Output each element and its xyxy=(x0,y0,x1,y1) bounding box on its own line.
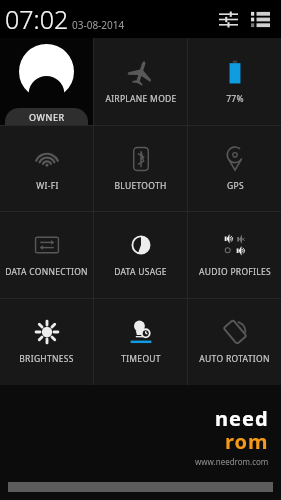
button[interactable]: WI-FI xyxy=(0,126,93,211)
staticText: www.needrom.com xyxy=(195,456,269,467)
staticText: AIRPLANE MODE xyxy=(105,93,177,105)
button[interactable]: BLUETOOTH xyxy=(94,126,187,211)
staticText: DATA USAGE xyxy=(114,266,167,278)
staticText: AUDIO PROFILES xyxy=(199,266,271,278)
staticText: 03-08-2014 xyxy=(72,18,125,32)
staticText: BLUETOOTH xyxy=(114,180,167,192)
staticText: TIMEOUT xyxy=(121,353,161,365)
button[interactable]: 77% xyxy=(188,38,281,125)
staticText: 07:02 xyxy=(5,2,69,36)
staticText: need xyxy=(215,405,269,432)
button[interactable]: AUDIO PROFILES xyxy=(188,212,281,298)
button[interactable]: TIMEOUT xyxy=(94,299,187,385)
staticText: WI-FI xyxy=(36,180,59,192)
staticText: DATA CONNECTION xyxy=(5,266,88,278)
button[interactable]: DATA USAGE xyxy=(94,212,187,298)
staticText: OWNER xyxy=(29,111,65,123)
button[interactable]: AUTO ROTATION xyxy=(188,299,281,385)
button[interactable]: GPS xyxy=(188,126,281,211)
button[interactable]: Notifications xyxy=(246,5,274,33)
button[interactable]: Owner profile xyxy=(0,38,93,125)
button[interactable]: AIRPLANE MODE xyxy=(94,38,187,125)
button[interactable]: BRIGHTNESS xyxy=(0,299,93,385)
staticText: AUTO ROTATION xyxy=(199,353,270,365)
button[interactable]: Settings xyxy=(214,5,242,33)
staticText: rom xyxy=(225,428,269,455)
staticText: BRIGHTNESS xyxy=(19,353,74,365)
staticText: GPS xyxy=(227,180,244,192)
button[interactable]: DATA CONNECTION xyxy=(0,212,93,298)
staticText: 77% xyxy=(226,93,244,105)
